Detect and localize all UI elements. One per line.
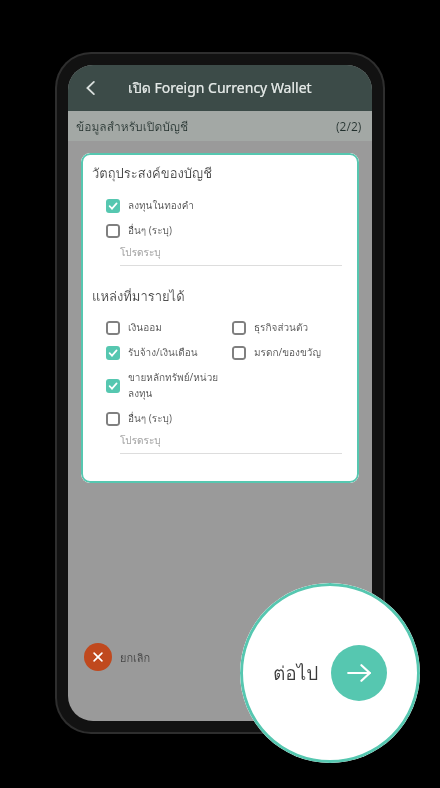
staticText: โปรดระบุ xyxy=(120,433,161,449)
staticText: ขายหลักทรัพย์/หน่วยลงทุน xyxy=(128,370,232,402)
staticText: ต่อไป xyxy=(273,658,319,688)
button[interactable]: มรดก/ของขวัญ xyxy=(232,345,321,361)
button[interactable]: อื่นๆ (ระบุ) xyxy=(106,411,172,427)
button[interactable]: รับจ้าง/เงินเดือน xyxy=(106,345,198,361)
staticText: (2/2) xyxy=(336,118,362,134)
staticText: มรดก/ของขวัญ xyxy=(254,345,321,361)
button[interactable]: อื่นๆ (ระบุ) xyxy=(106,223,172,239)
staticText: เปิด Foreign Currency Wallet xyxy=(128,77,312,99)
staticText: ธุรกิจส่วนตัว xyxy=(254,320,309,336)
staticText: เงินออม xyxy=(128,320,162,336)
staticText: วัตถุประสงค์ของบัญชี xyxy=(92,163,213,184)
button[interactable]: เงินออม xyxy=(106,320,162,336)
staticText: โปรดระบุ xyxy=(120,245,161,261)
staticText: ข้อมูลสำหรับเปิดบัญชี xyxy=(76,117,189,136)
button[interactable]: ขายหลักทรัพย์/หน่วยลงทุน xyxy=(106,370,232,402)
staticText: อื่นๆ (ระบุ) xyxy=(128,411,172,427)
staticText: ลงทุนในทองคำ xyxy=(128,198,194,214)
button[interactable]: ธุรกิจส่วนตัว xyxy=(232,320,309,336)
staticText: แหล่งที่มารายได้ xyxy=(92,286,185,307)
button[interactable]: ต่อไป xyxy=(240,583,420,763)
staticText: อื่นๆ (ระบุ) xyxy=(128,223,172,239)
button[interactable]: Back xyxy=(74,71,108,105)
staticText: ยกเลิก xyxy=(120,649,151,666)
staticText: รับจ้าง/เงินเดือน xyxy=(128,345,198,361)
button[interactable]: ลงทุนในทองคำ xyxy=(106,198,194,214)
button[interactable]: ยกเลิก xyxy=(84,643,151,671)
